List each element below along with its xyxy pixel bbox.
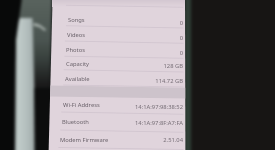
staticText: Photos [66, 46, 85, 54]
staticText: Songs [68, 16, 85, 24]
button[interactable] [51, 98, 185, 113]
staticText: 14:1A:97:8F:A7:FA [103, 119, 183, 127]
button[interactable] [51, 27, 185, 42]
staticText: Capacity [66, 60, 90, 68]
staticText: Bluetooth [62, 118, 89, 126]
staticText: 0 [103, 19, 183, 27]
staticText: 128 GB [103, 62, 183, 70]
staticText: 114.72 GB [103, 77, 183, 85]
staticText: Videos [67, 31, 86, 39]
staticText: 0 [103, 34, 183, 42]
staticText: 14:1A:97:98:38:52 [103, 103, 183, 111]
staticText: Available [65, 75, 90, 83]
staticText: Wi-Fi Address [63, 101, 100, 109]
staticText: 2.51.04 [103, 136, 183, 144]
button[interactable] [51, 71, 185, 86]
button[interactable] [51, 56, 185, 71]
staticText: 0 [103, 49, 183, 57]
staticText: Modem Firmware [60, 136, 109, 144]
button[interactable] [51, 115, 185, 130]
button[interactable] [51, 132, 185, 147]
button[interactable] [51, 12, 185, 27]
button[interactable] [51, 43, 185, 58]
